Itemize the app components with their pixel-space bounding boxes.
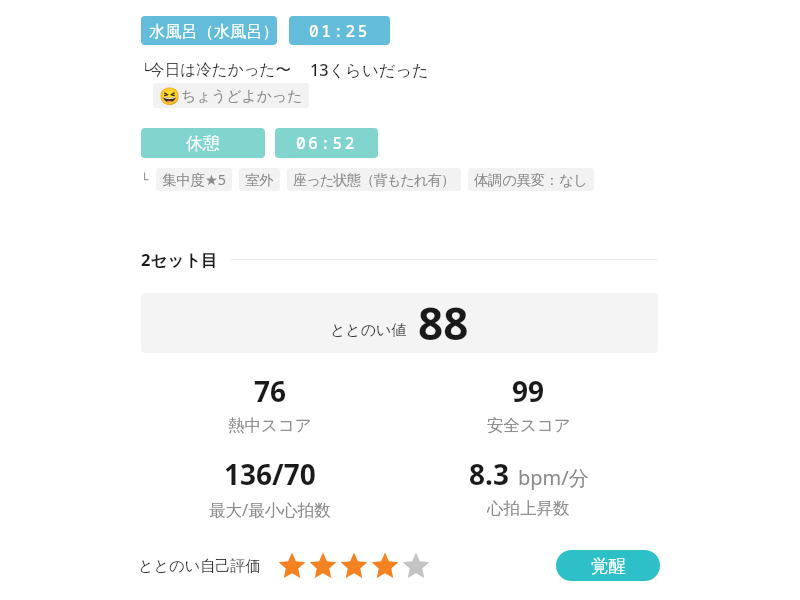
staticText: 8.3 (469, 455, 509, 493)
button[interactable]: 集中度★5 (156, 168, 232, 191)
staticText: └ (142, 63, 150, 78)
staticText: bpm/分 (518, 464, 589, 491)
staticText: 最大/最小心拍数 (209, 498, 331, 521)
staticText: ととのい値 (330, 321, 407, 340)
staticText: 心拍上昇数 (487, 498, 570, 519)
button[interactable]: 体調の異変：なし (468, 168, 594, 191)
staticText: 体調の異変：なし (474, 171, 588, 189)
button[interactable]: Rating star 5 (402, 551, 433, 581)
staticText: 熱中スコア (228, 415, 312, 436)
button[interactable]: 06:52 (275, 128, 378, 158)
staticText: 休憩 (186, 133, 220, 154)
button[interactable]: Rating star 1 (278, 551, 309, 581)
button[interactable]: Rating star 2 (309, 551, 340, 581)
staticText: 😆 (159, 86, 181, 106)
button[interactable]: Rating star 4 (371, 551, 402, 581)
button[interactable]: 水風呂（水風呂） (141, 16, 277, 45)
staticText: 13くらいだった (310, 59, 429, 81)
staticText: └ (141, 173, 149, 187)
button[interactable]: 休憩 (141, 128, 265, 158)
staticText: 安全スコア (487, 415, 571, 436)
staticText: 06:52 (296, 132, 358, 154)
button[interactable]: 覚醒 (556, 550, 660, 581)
button[interactable]: 01:25 (289, 16, 390, 45)
button[interactable]: Rating star 3 (340, 551, 371, 581)
button[interactable]: 室外 (239, 168, 280, 191)
staticText: 集中度★5 (162, 170, 226, 190)
staticText: 136/70 (224, 455, 316, 493)
staticText: 座った状態（背もたれ有） (293, 171, 455, 189)
staticText: 水風呂（水風呂） (149, 21, 277, 41)
button[interactable]: 座った状態（背もたれ有） (287, 168, 461, 191)
staticText: 今日は冷たかった〜 (149, 60, 292, 80)
staticText: 覚醒 (591, 555, 626, 577)
staticText: ととのい自己評価 (138, 556, 261, 575)
staticText: ちょうどよかった (181, 87, 303, 106)
staticText: 室外 (245, 171, 274, 189)
staticText: 76 (254, 372, 287, 410)
button[interactable]: 😆 (153, 83, 309, 108)
staticText: 99 (512, 372, 545, 410)
staticText: 2セット目 (141, 248, 218, 271)
staticText: 88 (418, 293, 469, 353)
staticText: 01:25 (309, 20, 371, 42)
